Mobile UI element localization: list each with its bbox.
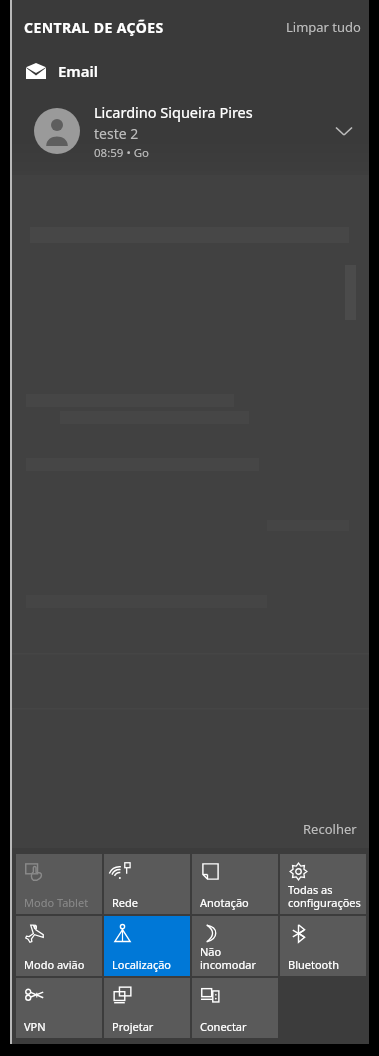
staticText: VPN [24, 1019, 46, 1034]
button[interactable]: Anotação [192, 854, 278, 914]
button[interactable]: Não incomodar [192, 916, 278, 976]
staticText: Localização [112, 957, 171, 972]
button[interactable]: Modo avião [16, 916, 102, 976]
staticText: Não incomodar [200, 944, 256, 972]
staticText: Licardino Siqueira Pires [94, 102, 253, 122]
button[interactable]: Rede [104, 854, 190, 914]
staticText: Rede [112, 895, 139, 910]
staticText: Modo Tablet [24, 895, 89, 910]
staticText: Modo avião [24, 957, 85, 972]
staticText: Anotação [200, 895, 249, 910]
button[interactable]: Projetar [104, 978, 190, 1038]
button[interactable]: Limpar tudo [278, 12, 369, 42]
staticText: Limpar tudo [286, 18, 361, 36]
button[interactable]: Localização [104, 916, 190, 976]
staticText: CENTRAL DE AÇÕES [24, 18, 164, 37]
staticText: teste 2 [94, 124, 139, 143]
staticText: Recolher [303, 820, 357, 838]
staticText: Email [58, 61, 99, 81]
button[interactable]: VPN [16, 978, 102, 1038]
staticText: Todas as configurações [288, 882, 361, 910]
button[interactable]: Bluetooth [280, 916, 366, 976]
staticText: Bluetooth [288, 957, 340, 972]
button[interactable]: Email [12, 54, 369, 88]
staticText: Conectar [200, 1019, 247, 1034]
button[interactable]: Licardino Siqueira Pires [12, 94, 369, 168]
staticText: Projetar [112, 1019, 154, 1034]
staticText: 08:59 • Go [94, 145, 150, 161]
button[interactable]: Recolher [295, 816, 365, 842]
button[interactable]: Conectar [192, 978, 278, 1038]
button[interactable]: Expandir notificação [327, 114, 361, 148]
button[interactable]: Todas as configurações [280, 854, 366, 914]
button[interactable]: Modo Tablet [16, 854, 102, 914]
